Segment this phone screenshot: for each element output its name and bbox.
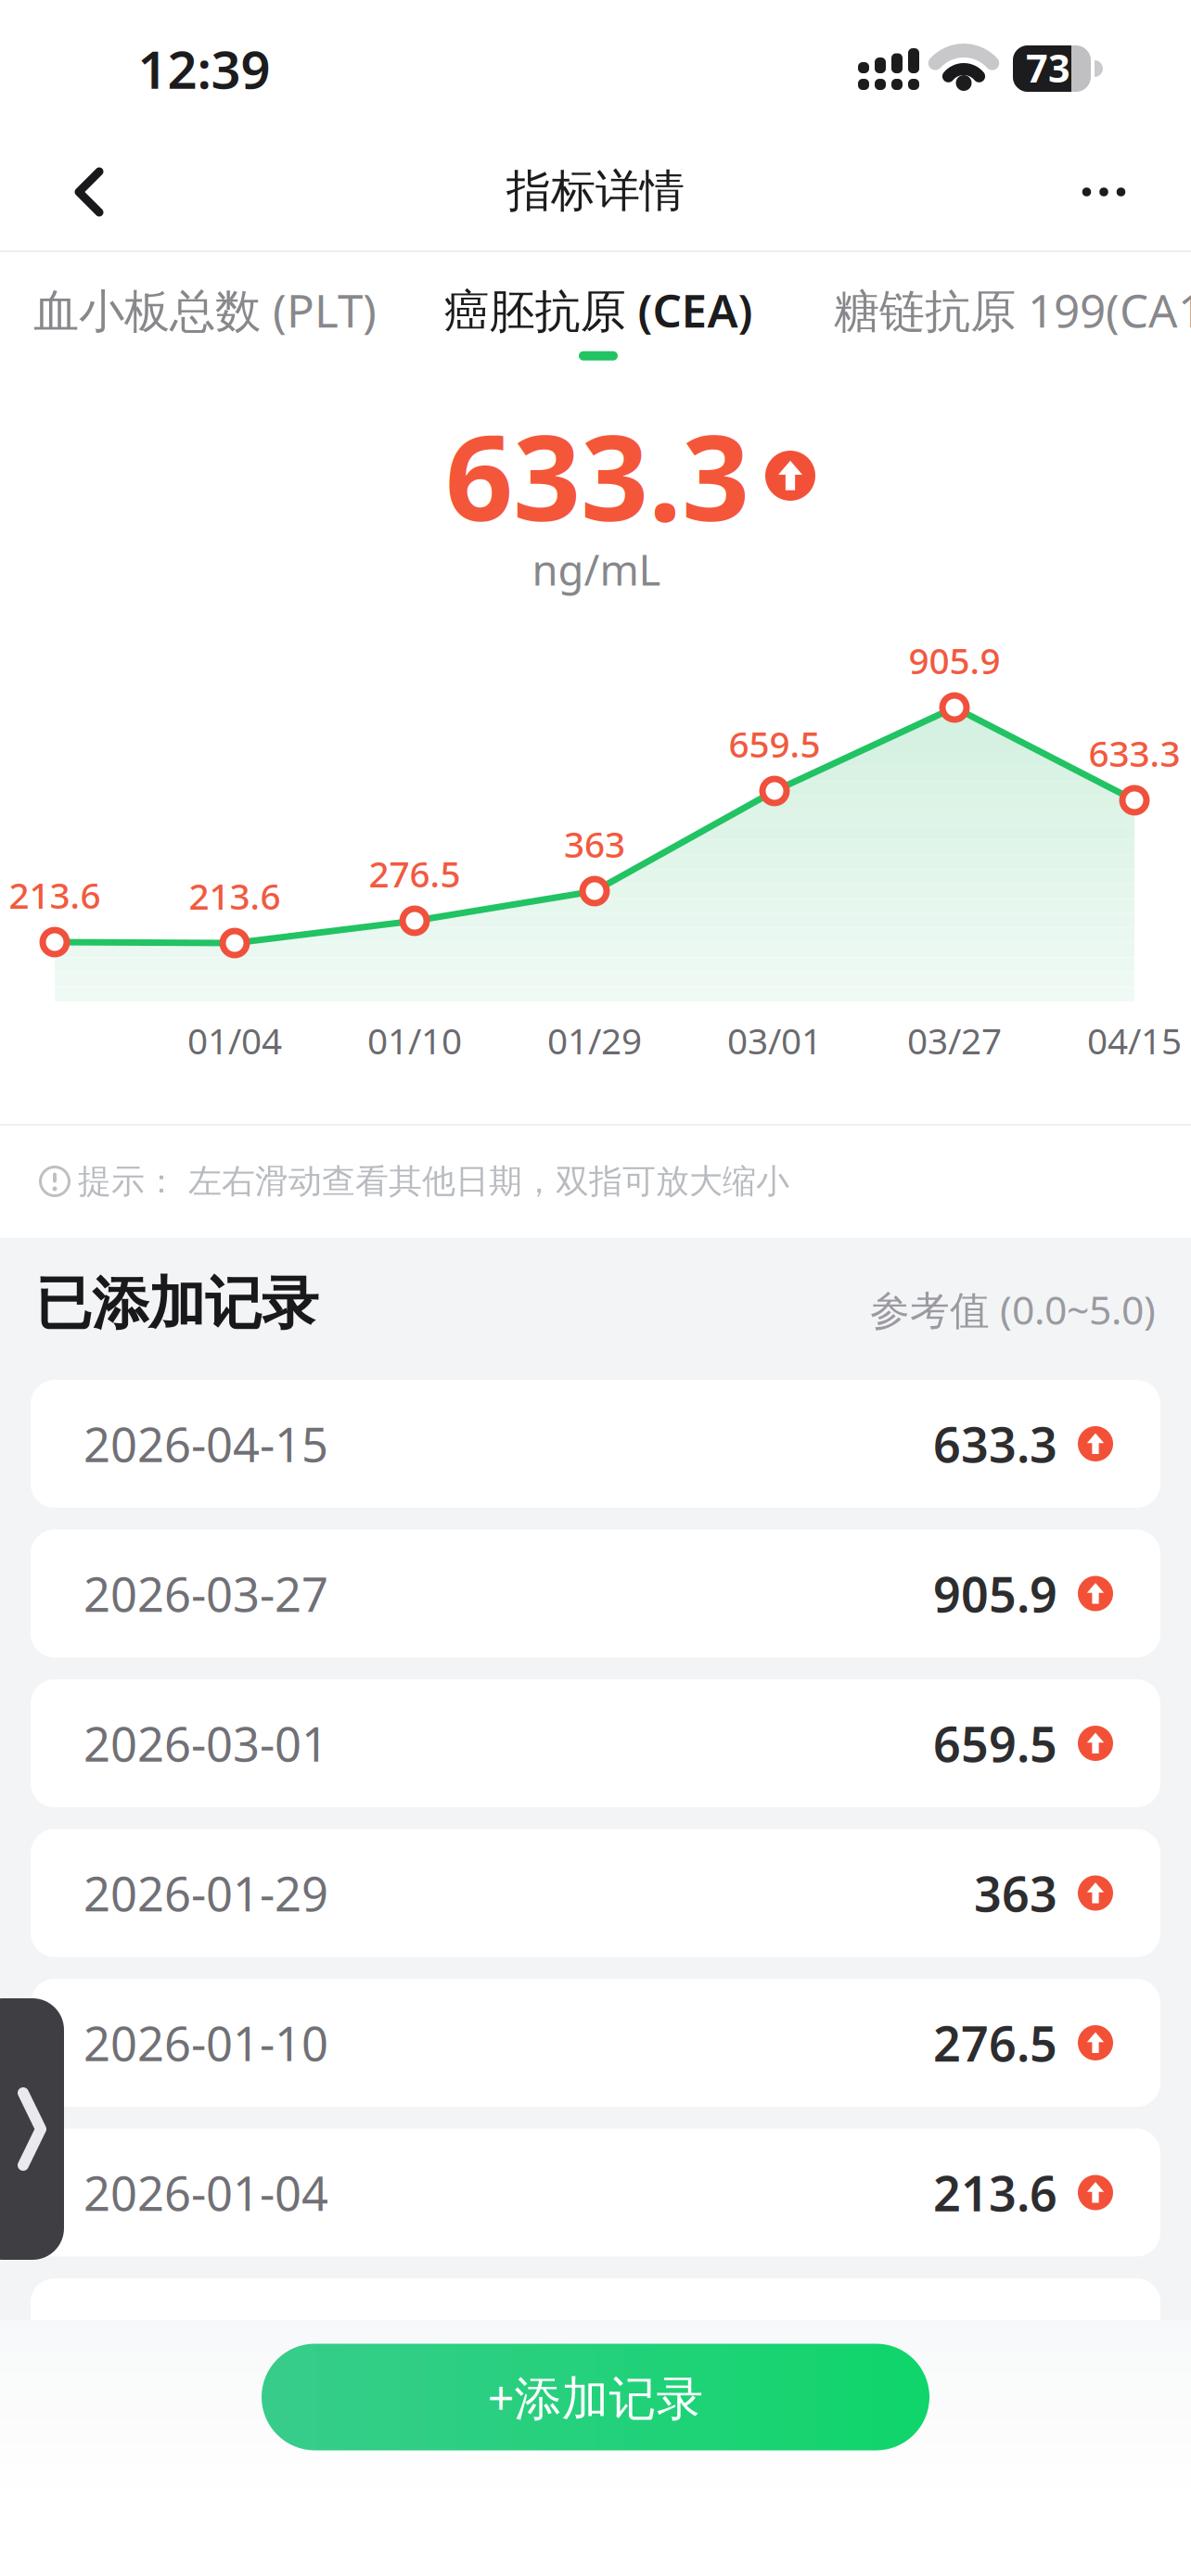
staticText: 905.9	[933, 1562, 1057, 1626]
button[interactable]: 2026-03-27	[31, 1530, 1160, 1658]
staticText: 2026-03-01	[83, 1712, 328, 1775]
staticText: 2026-03-27	[83, 1562, 328, 1625]
staticText: 905.9	[909, 636, 1000, 684]
button[interactable]: 癌胚抗原 (CEA)	[444, 279, 753, 360]
staticText: 73	[1026, 42, 1070, 93]
staticText: 363	[564, 820, 625, 868]
staticText: 参考值 (0.0~5.0)	[870, 1283, 1156, 1336]
button[interactable]: 2026-03-01	[31, 1679, 1160, 1807]
staticText: 633.3	[445, 396, 749, 554]
staticText: 633.3	[1089, 729, 1180, 777]
staticText: 04/15	[1087, 1017, 1182, 1064]
staticText: 276.5	[369, 850, 461, 897]
staticText: 01/10	[367, 1017, 462, 1064]
staticText: 213.6	[933, 2161, 1057, 2225]
button[interactable]: 糖链抗原 199(CA19-9)	[834, 263, 1191, 356]
staticText: 已添加记录	[35, 1269, 318, 1339]
staticText: 12:39	[138, 34, 270, 103]
staticText: 03/27	[907, 1017, 1002, 1064]
staticText: 276.5	[933, 2011, 1057, 2075]
button[interactable]: 2026-01-29	[31, 1829, 1160, 1957]
staticText: 363	[974, 1861, 1057, 1925]
staticText: 糖链抗原 199(CA19-9)	[834, 279, 1191, 340]
staticText: 癌胚抗原 (CEA)	[444, 279, 753, 340]
staticText: 659.5	[729, 720, 820, 767]
staticText: 01/29	[547, 1017, 642, 1064]
button[interactable]: 2026-01-10	[31, 1979, 1160, 2107]
button[interactable]: 血小板总数 (PLT)	[33, 263, 377, 356]
staticText: 03/01	[727, 1017, 822, 1064]
staticText: 2026-01-04	[83, 2161, 328, 2224]
staticText: 2026-04-15	[83, 1413, 328, 1475]
staticText: 2026-01-29	[83, 1862, 328, 1924]
staticText: 血小板总数 (PLT)	[33, 279, 377, 340]
staticText: 提示： 左右滑动查看其他日期，双指可放大缩小	[78, 1161, 789, 1202]
button[interactable]: 2026-01-04	[31, 2129, 1160, 2257]
staticText: 213.6	[189, 872, 281, 919]
button[interactable]: +添加记录	[262, 2344, 929, 2450]
staticText: +添加记录	[487, 2366, 704, 2428]
button[interactable]: 展开	[0, 1998, 64, 2260]
staticText: ng/mL	[532, 541, 661, 597]
staticText: 01/04	[187, 1017, 282, 1064]
staticText: 659.5	[933, 1711, 1057, 1775]
staticText: 2026-01-10	[83, 2012, 328, 2074]
button[interactable]: 返回	[64, 163, 120, 221]
staticText: 指标详情	[506, 164, 685, 218]
staticText: 633.3	[933, 1412, 1057, 1476]
button[interactable]: 2026-04-15	[31, 1380, 1160, 1508]
button[interactable]: 更多	[1067, 164, 1141, 220]
staticText: 213.6	[9, 871, 101, 919]
